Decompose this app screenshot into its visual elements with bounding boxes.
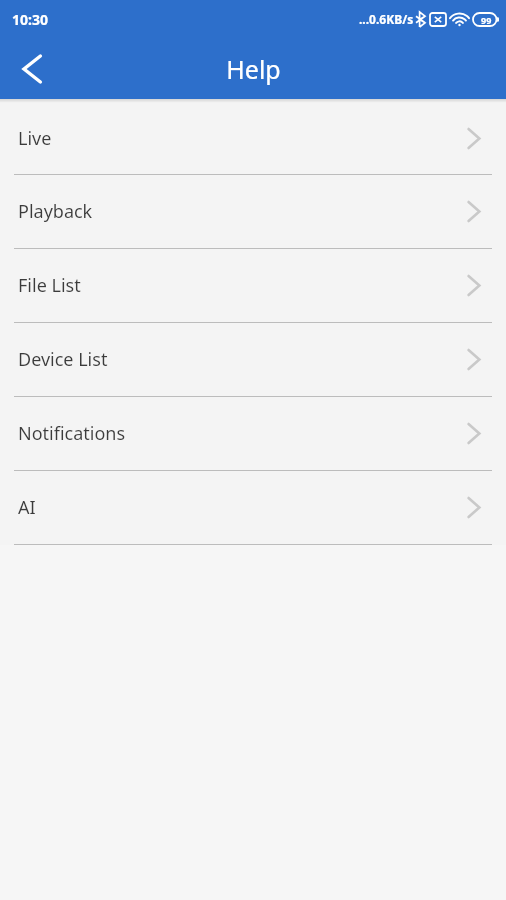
button[interactable]: Notifications [0,397,506,470]
button[interactable]: File List [0,249,506,322]
button[interactable]: Device List [0,323,506,396]
button[interactable]: Playback [0,175,506,248]
staticText: 10:30 [12,10,48,29]
staticText: File List [18,273,81,298]
staticText: Help [226,52,281,86]
staticText: Notifications [18,421,126,446]
button[interactable]: Live [0,103,506,174]
staticText: ...0.6KB/s [359,11,414,27]
staticText: AI [18,495,36,520]
staticText: Device List [18,347,108,372]
staticText: Playback [18,199,93,224]
staticText: Live [18,126,52,151]
staticText: 99 [481,14,492,26]
button[interactable]: Back [0,38,64,99]
button[interactable]: AI [0,471,506,544]
